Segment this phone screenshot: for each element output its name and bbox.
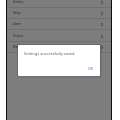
staticText: Display xyxy=(13,34,24,38)
button[interactable]: Battery xyxy=(7,0,111,8)
button[interactable]: Alarm xyxy=(7,19,111,30)
button[interactable]: OK xyxy=(86,65,95,72)
staticText: Alarm xyxy=(13,22,22,26)
staticText: OK xyxy=(88,66,93,71)
button[interactable]: Memory xyxy=(7,42,111,53)
button[interactable]: Display xyxy=(7,31,111,42)
staticText: Relay xyxy=(13,11,21,15)
staticText: Memory xyxy=(13,45,25,49)
staticText: Battery xyxy=(13,0,24,4)
button[interactable]: Relay xyxy=(7,8,111,19)
staticText: Settings successfully saved xyxy=(24,51,75,56)
